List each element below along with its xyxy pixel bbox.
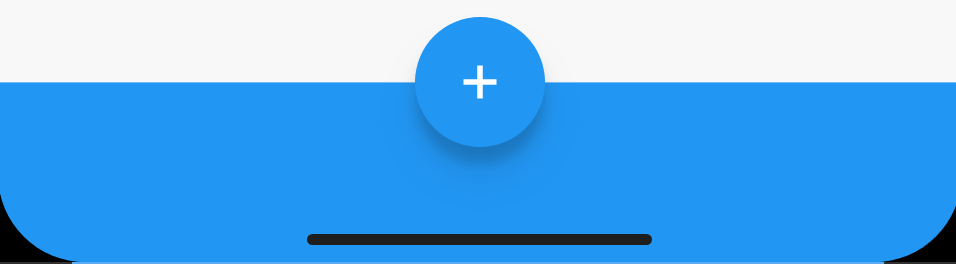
button[interactable]: Add (415, 17, 545, 147)
